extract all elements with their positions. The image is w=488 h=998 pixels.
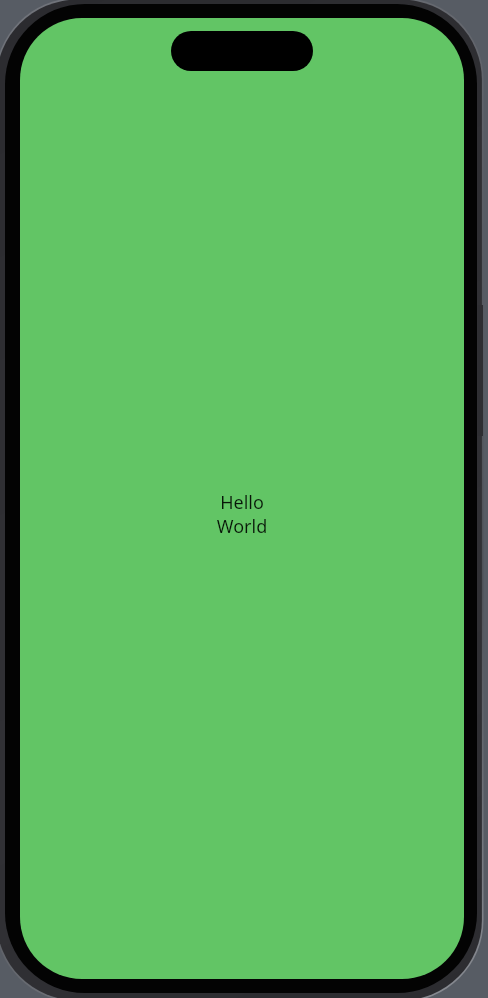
button[interactable]: Dynamic island, camera and sensors xyxy=(171,31,313,71)
button[interactable]: Hello World xyxy=(20,18,464,979)
staticText: Hello World xyxy=(182,490,302,538)
